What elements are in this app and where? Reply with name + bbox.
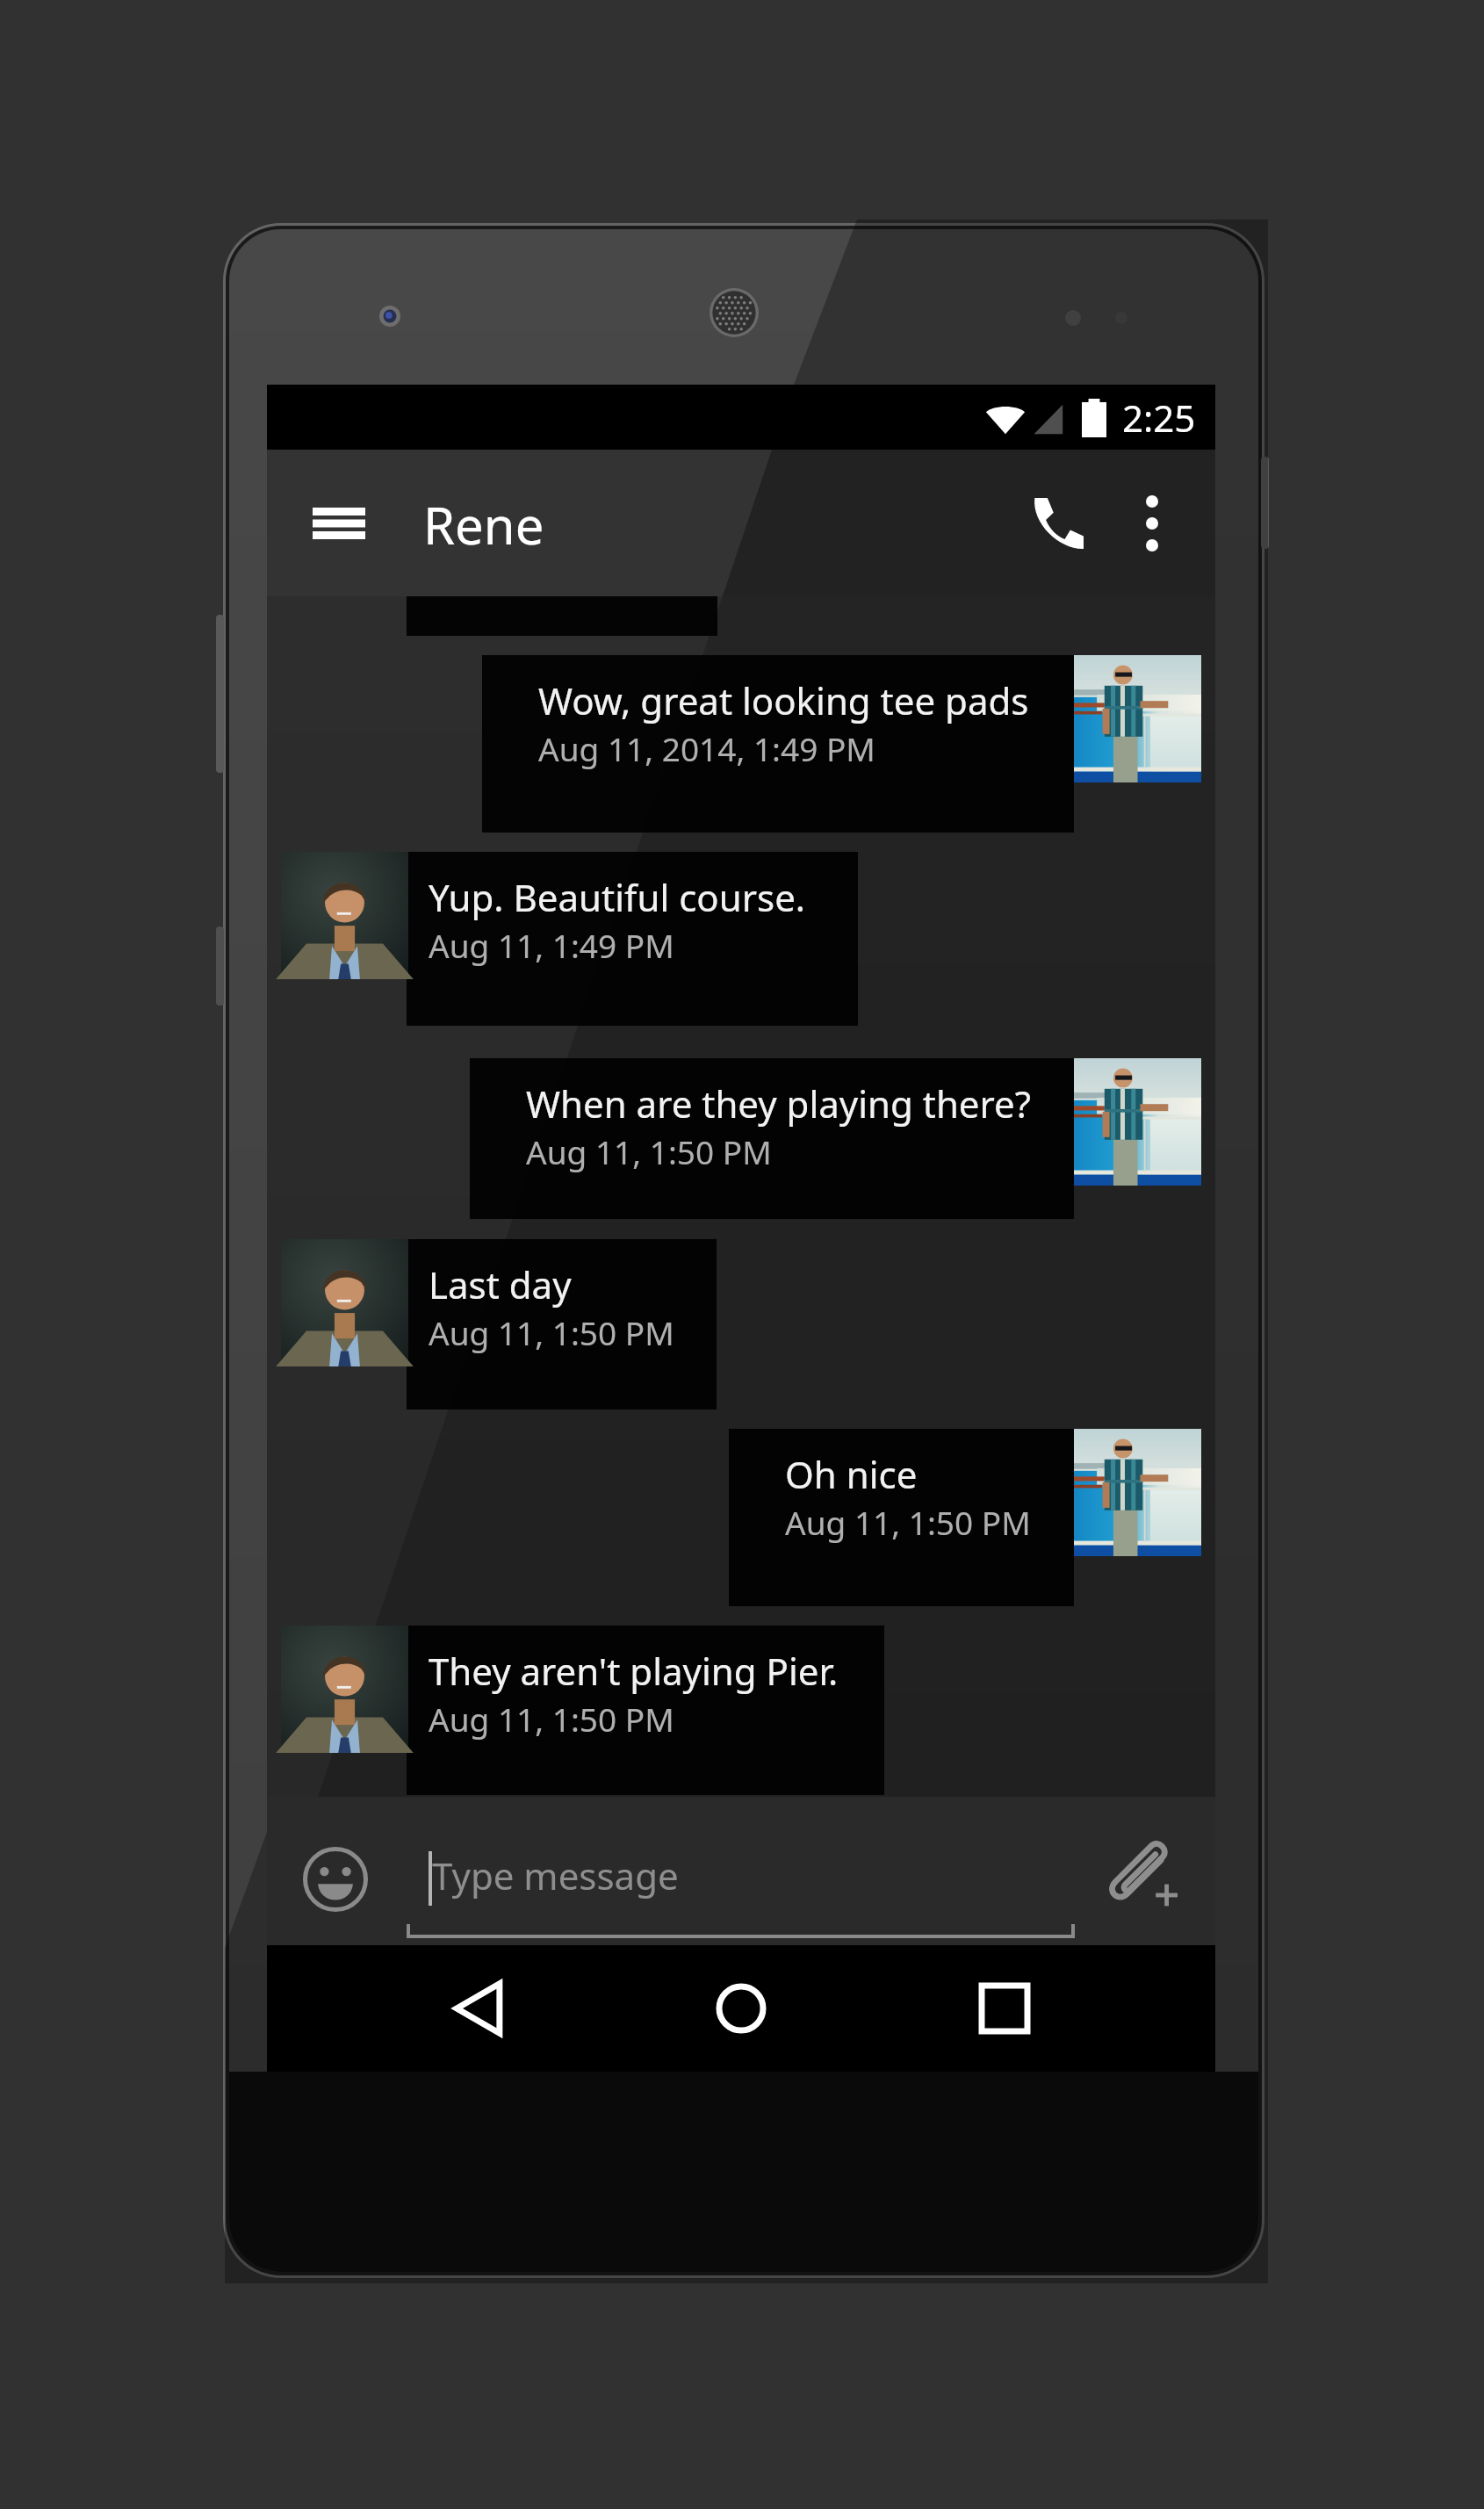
button[interactable]: Home <box>662 1945 820 2072</box>
staticText: Aug 11, 1:50 PM <box>785 1500 1031 1544</box>
button[interactable]: Last day <box>407 1239 717 1410</box>
button[interactable]: They aren't playing Pier. <box>407 1626 884 1795</box>
staticText: Last day <box>429 1259 572 1309</box>
button[interactable]: Call <box>994 450 1121 596</box>
staticText: They aren't playing Pier. <box>429 1646 839 1696</box>
button[interactable]: Insert emoji <box>283 1827 388 1932</box>
button[interactable]: Yup. Beautiful course. <box>407 852 858 1026</box>
staticText: Wow, great looking tee pads <box>538 675 1029 725</box>
staticText: Aug 11, 1:50 PM <box>526 1129 772 1173</box>
staticText: Aug 11, 1:50 PM <box>429 1697 674 1741</box>
staticText: Aug 11, 1:49 PM <box>429 923 674 967</box>
staticText: 2:25 <box>1122 393 1196 443</box>
staticText: Type message <box>432 1850 679 1900</box>
button[interactable]: Open navigation drawer <box>274 450 404 596</box>
button[interactable]: Wow, great looking tee pads <box>482 655 1074 833</box>
button[interactable]: Attach file <box>1096 1826 1192 1922</box>
button[interactable]: Back <box>399 1945 557 2072</box>
button[interactable]: Oh nice <box>729 1429 1074 1606</box>
staticText: When are they playing there? <box>526 1078 1031 1128</box>
button[interactable]: Type message <box>407 1814 1075 1938</box>
button[interactable]: More options <box>1095 450 1209 596</box>
staticText: Oh nice <box>785 1449 918 1499</box>
staticText: Aug 11, 1:50 PM <box>429 1310 674 1354</box>
button[interactable]: Recent apps <box>926 1945 1084 2072</box>
staticText: Yup. Beautiful course. <box>429 872 806 922</box>
button[interactable]: When are they playing there? <box>470 1058 1074 1219</box>
staticText: Rene <box>423 490 544 559</box>
staticText: Aug 11, 2014, 1:49 PM <box>538 726 875 770</box>
